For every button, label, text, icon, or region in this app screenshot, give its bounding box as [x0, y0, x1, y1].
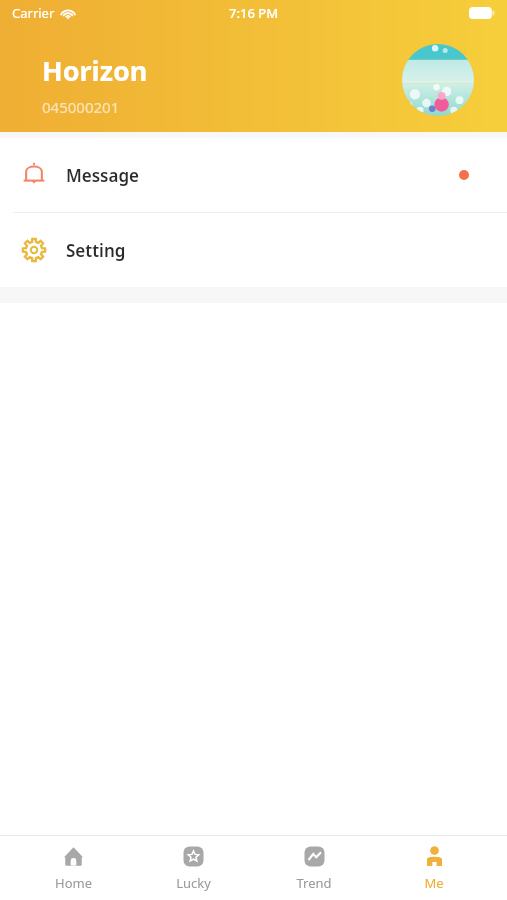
staticText: Horizon [42, 52, 148, 89]
staticText: Trend [296, 874, 332, 892]
button[interactable]: Home [25, 836, 121, 900]
staticText: Me [424, 874, 444, 892]
staticText: Setting [66, 239, 126, 262]
button[interactable]: Lucky [145, 836, 241, 900]
button[interactable]: Message [0, 138, 507, 212]
staticText: Home [55, 874, 92, 892]
button[interactable]: Profile avatar [402, 44, 474, 116]
staticText: 045000201 [42, 97, 120, 117]
button[interactable]: Setting [0, 213, 507, 287]
staticText: Lucky [176, 874, 211, 892]
staticText: Message [66, 164, 140, 187]
staticText: 7:16 PM [229, 4, 279, 22]
button[interactable]: Me [386, 836, 482, 900]
staticText: Carrier [12, 4, 55, 22]
button[interactable]: Trend [266, 836, 362, 900]
